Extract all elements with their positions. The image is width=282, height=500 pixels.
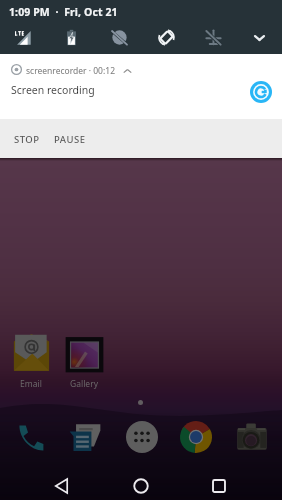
button[interactable]: Camera [232,417,272,457]
staticText: Gallery [70,378,98,390]
staticText: screenrecorder · 00:12 [26,65,115,77]
button[interactable]: Battery charging [60,26,82,48]
staticText: Email [20,378,42,390]
button[interactable]: PAUSE [46,129,94,150]
staticText: 1:09 PM · Fri, Oct 21 [9,5,118,19]
button[interactable]: Chrome [176,417,216,457]
button[interactable]: STOP [6,129,48,150]
staticText: PAUSE [54,133,86,146]
button[interactable]: Recents [196,468,242,500]
button[interactable]: Messaging [65,417,105,457]
button[interactable]: Phone [9,417,49,457]
button[interactable]: Apps [122,417,162,457]
button[interactable]: Back [39,468,85,500]
button[interactable]: Home [118,468,164,500]
button[interactable]: Gallery [63,333,105,390]
button[interactable]: Mute [108,26,130,48]
button[interactable]: Email [10,333,52,390]
button[interactable]: Collapse [248,26,270,48]
staticText: STOP [14,133,40,146]
button[interactable]: Mobile signal [11,26,33,48]
staticText: Screen recording [11,83,95,97]
button[interactable]: Auto rotate [155,26,177,48]
button[interactable]: Airplane mode [202,26,224,48]
